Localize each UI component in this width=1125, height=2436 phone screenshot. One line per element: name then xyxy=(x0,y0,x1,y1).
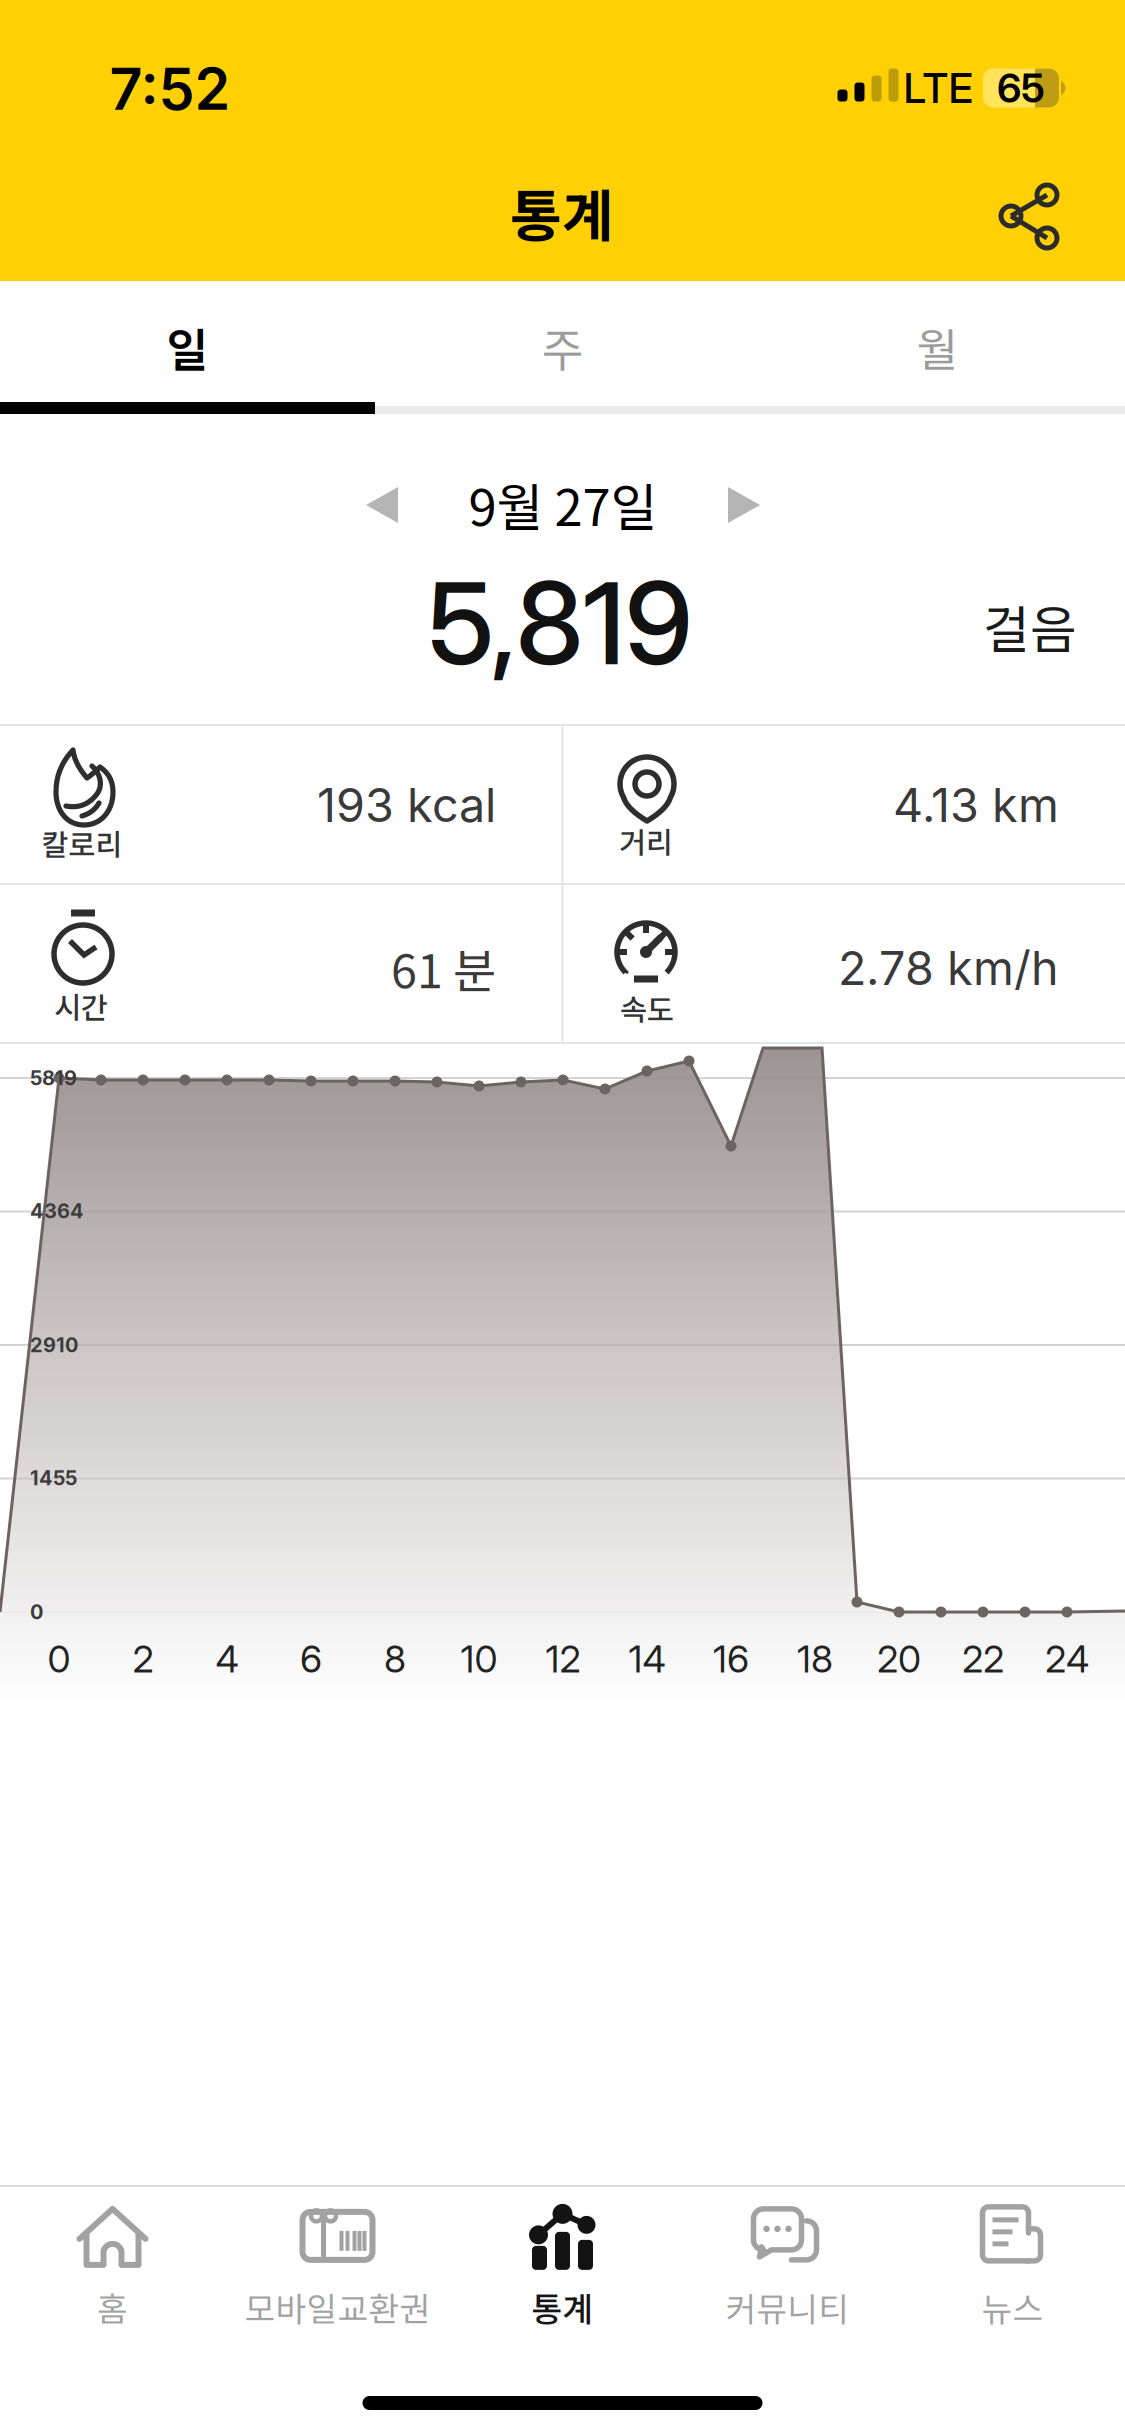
staticText: 10 xyxy=(460,1636,497,1682)
staticText: 61 분 xyxy=(391,934,496,1002)
staticText: 22 xyxy=(962,1636,1004,1682)
staticText: 193 kcal xyxy=(317,777,496,833)
button[interactable]: 모바일교환권 xyxy=(225,2187,450,2347)
staticText: 24 xyxy=(1045,1636,1089,1682)
staticText: 통계 xyxy=(510,171,614,253)
staticText: 주 xyxy=(541,314,583,380)
staticText: 통계 xyxy=(531,2283,593,2331)
button[interactable]: 주 xyxy=(375,287,750,407)
staticText: 6 xyxy=(300,1636,322,1682)
button[interactable]: 일 xyxy=(0,287,375,407)
staticText: 모바일교환권 xyxy=(244,2283,430,2331)
staticText: 2.78 km/h xyxy=(838,940,1059,996)
button[interactable]: 커뮤니티 xyxy=(675,2187,900,2347)
staticText: 2910 xyxy=(30,1333,78,1357)
staticText: 거리 xyxy=(619,820,673,862)
staticText: 20 xyxy=(877,1636,921,1682)
staticText: 홈 xyxy=(97,2283,128,2331)
button[interactable]: 홈 xyxy=(0,2187,225,2347)
staticText: 4364 xyxy=(30,1199,84,1223)
staticText: 5,819 xyxy=(428,554,692,691)
staticText: 4.13 km xyxy=(893,777,1059,833)
staticText: 65 xyxy=(997,64,1045,112)
staticText: 칼로리 xyxy=(41,822,122,864)
staticText: 1455 xyxy=(30,1466,77,1490)
staticText: 0 xyxy=(30,1600,43,1624)
staticText: 0 xyxy=(47,1636,70,1682)
staticText: 일 xyxy=(166,314,208,380)
staticText: 5819 xyxy=(30,1066,77,1090)
button[interactable]: 뉴스 xyxy=(900,2187,1125,2347)
staticText: 9월 27일 xyxy=(468,467,657,541)
staticText: 18 xyxy=(797,1636,833,1682)
button[interactable]: 통계 xyxy=(450,2187,675,2347)
staticText: 4 xyxy=(215,1636,238,1682)
staticText: 12 xyxy=(545,1636,580,1682)
button[interactable]: 다음 날짜 xyxy=(720,485,768,525)
staticText: 커뮤니티 xyxy=(725,2283,849,2331)
staticText: LTE xyxy=(903,63,972,113)
staticText: 7:52 xyxy=(109,54,230,124)
button[interactable]: 월 xyxy=(750,287,1125,407)
staticText: 뉴스 xyxy=(981,2283,1043,2331)
staticText: 16 xyxy=(713,1636,749,1682)
staticText: 14 xyxy=(628,1636,665,1682)
staticText: 8 xyxy=(384,1636,406,1682)
staticText: 속도 xyxy=(620,987,674,1029)
staticText: 걸음 xyxy=(983,589,1077,663)
button[interactable]: 공유 xyxy=(984,171,1074,261)
staticText: 2 xyxy=(132,1636,153,1682)
button[interactable]: 이전 날짜 xyxy=(358,485,406,525)
staticText: 월 xyxy=(916,314,958,380)
staticText: 시간 xyxy=(54,985,108,1027)
